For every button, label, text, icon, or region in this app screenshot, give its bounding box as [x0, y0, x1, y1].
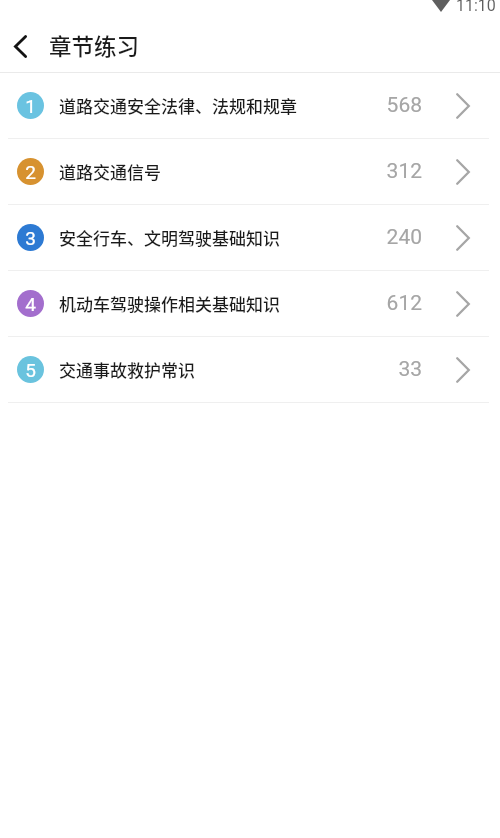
staticText: 交通事故救护常识 [59, 357, 195, 382]
staticText: 612 [386, 291, 422, 316]
staticText: 3 [25, 227, 36, 249]
staticText: 240 [386, 225, 422, 250]
staticText: 11:10 [456, 0, 496, 15]
button[interactable]: 1 [0, 73, 500, 138]
button[interactable]: 3 [0, 205, 500, 270]
staticText: 道路交通信号 [59, 159, 161, 184]
staticText: 568 [386, 93, 422, 118]
staticText: 章节练习 [49, 29, 140, 62]
staticText: 1 [25, 95, 36, 117]
button[interactable]: 5 [0, 337, 500, 402]
staticText: 道路交通安全法律、法规和规章 [59, 93, 297, 118]
button[interactable]: 2 [0, 139, 500, 204]
button[interactable]: 4 [0, 271, 500, 336]
staticText: 机动车驾驶操作相关基础知识 [59, 291, 280, 316]
staticText: 2 [25, 161, 36, 183]
staticText: 4 [25, 293, 36, 315]
staticText: 5 [25, 359, 36, 381]
staticText: 33 [398, 357, 422, 382]
button[interactable]: Back [0, 26, 40, 66]
staticText: 安全行车、文明驾驶基础知识 [59, 225, 280, 250]
staticText: 312 [386, 159, 422, 184]
